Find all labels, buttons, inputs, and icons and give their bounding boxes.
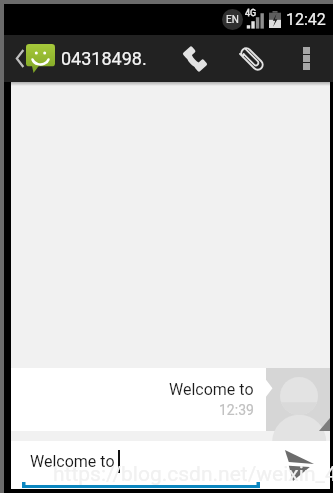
staticText: Welcome to bbox=[169, 380, 254, 399]
button[interactable]: More options bbox=[286, 35, 326, 82]
button[interactable]: Send bbox=[268, 441, 330, 489]
staticText: EN bbox=[226, 14, 239, 26]
staticText: https://blog.csdn.net/weixin_43788756 bbox=[53, 462, 333, 487]
staticText: 4G bbox=[245, 8, 257, 19]
button[interactable]: Welcome to bbox=[11, 368, 330, 431]
button[interactable]: Call bbox=[173, 35, 217, 82]
staticText: 12:42 bbox=[286, 10, 326, 29]
staticText: 04318498. bbox=[61, 48, 147, 69]
button[interactable]: Navigate up bbox=[4, 35, 55, 82]
staticText: 12:39 bbox=[219, 402, 254, 418]
button[interactable]: Welcome to bbox=[11, 441, 268, 489]
button[interactable]: Attach bbox=[217, 35, 286, 82]
staticText: Welcome to bbox=[30, 452, 115, 471]
